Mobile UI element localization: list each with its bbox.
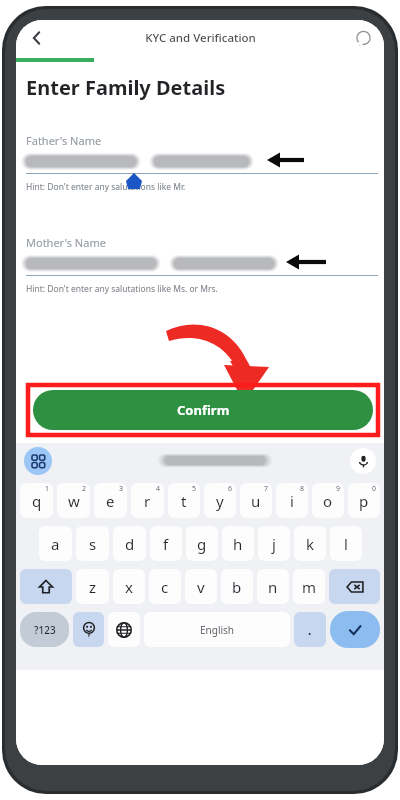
button[interactable]: j (258, 526, 290, 561)
button[interactable]: Emoji (73, 612, 104, 647)
button[interactable]: h (222, 526, 254, 561)
staticText: d (125, 534, 135, 554)
button[interactable]: k (294, 526, 326, 561)
button[interactable]: English (144, 612, 290, 647)
button[interactable]: x (113, 569, 145, 604)
staticText: 6 (228, 484, 233, 494)
button[interactable]: ?123 (20, 612, 69, 647)
staticText: ?123 (34, 623, 56, 637)
staticText: English (200, 623, 235, 637)
staticText: l (344, 534, 348, 554)
button[interactable]: d (113, 526, 146, 561)
staticText: m (302, 577, 317, 597)
staticText: u (251, 491, 261, 511)
staticText: w (68, 491, 80, 511)
button[interactable]: Toolbar (24, 447, 52, 475)
button[interactable]: g (186, 526, 218, 561)
button[interactable]: n (257, 569, 289, 604)
staticText: q (32, 491, 42, 511)
button[interactable]: v (185, 569, 217, 604)
button[interactable]: m (293, 569, 325, 604)
staticText: r (144, 491, 151, 511)
button[interactable]: Shift (20, 569, 72, 604)
staticText: 2 (82, 484, 87, 494)
staticText: 9 (336, 484, 341, 494)
button[interactable]: u (240, 483, 272, 518)
button[interactable]: Help (348, 23, 378, 53)
button[interactable]: f (150, 526, 182, 561)
staticText: b (232, 577, 242, 597)
staticText: 0 (372, 484, 377, 494)
staticText: Confirm (177, 401, 230, 419)
button[interactable]: y (204, 483, 236, 518)
staticText: 1 (45, 484, 50, 494)
staticText: p (359, 491, 369, 511)
staticText: n (268, 577, 278, 597)
button[interactable]: Language (108, 612, 140, 647)
staticText: Mother's Name (26, 235, 106, 250)
staticText: x (125, 577, 133, 597)
staticText: z (89, 577, 97, 597)
staticText: t (181, 491, 187, 511)
button[interactable]: t (168, 483, 200, 518)
button[interactable]: s (76, 526, 109, 561)
button[interactable]: Backspace (329, 569, 380, 604)
staticText: j (272, 534, 276, 554)
button[interactable]: a (39, 526, 72, 561)
staticText: 8 (300, 484, 305, 494)
button[interactable]: w (57, 483, 90, 518)
button[interactable]: Voice input (350, 448, 376, 474)
staticText: 5 (192, 484, 197, 494)
staticText: v (197, 577, 205, 597)
button[interactable]: . (294, 612, 326, 647)
staticText: g (197, 534, 207, 554)
staticText: Hint: Don't enter any salutations like M… (26, 283, 218, 295)
staticText: o (323, 491, 333, 511)
staticText: 3 (119, 484, 124, 494)
button[interactable]: c (149, 569, 181, 604)
staticText: e (106, 491, 115, 511)
staticText: Enter Family Details (26, 74, 226, 101)
button[interactable]: o (312, 483, 344, 518)
button[interactable]: Back (20, 21, 54, 55)
button[interactable]: r (131, 483, 164, 518)
staticText: f (163, 534, 169, 554)
staticText: k (306, 534, 315, 554)
button[interactable]: q (20, 483, 53, 518)
staticText: Father's Name (26, 133, 102, 148)
staticText: i (290, 491, 294, 511)
button[interactable]: b (221, 569, 253, 604)
staticText: 7 (264, 484, 269, 494)
staticText: h (233, 534, 243, 554)
button[interactable]: Enter (330, 611, 380, 648)
staticText: c (161, 577, 169, 597)
staticText: KYC and Verification (145, 30, 256, 46)
staticText: a (51, 534, 60, 554)
button[interactable]: l (330, 526, 362, 561)
staticText: s (89, 534, 97, 554)
staticText: . (308, 622, 312, 638)
button[interactable]: e (94, 483, 127, 518)
staticText: y (216, 491, 224, 511)
button[interactable]: Confirm (33, 390, 373, 430)
staticText: Hint: Don't enter any salutations like M… (26, 181, 186, 193)
staticText: 4 (156, 484, 161, 494)
button[interactable]: p (348, 483, 380, 518)
button[interactable]: i (276, 483, 308, 518)
button[interactable]: z (76, 569, 109, 604)
